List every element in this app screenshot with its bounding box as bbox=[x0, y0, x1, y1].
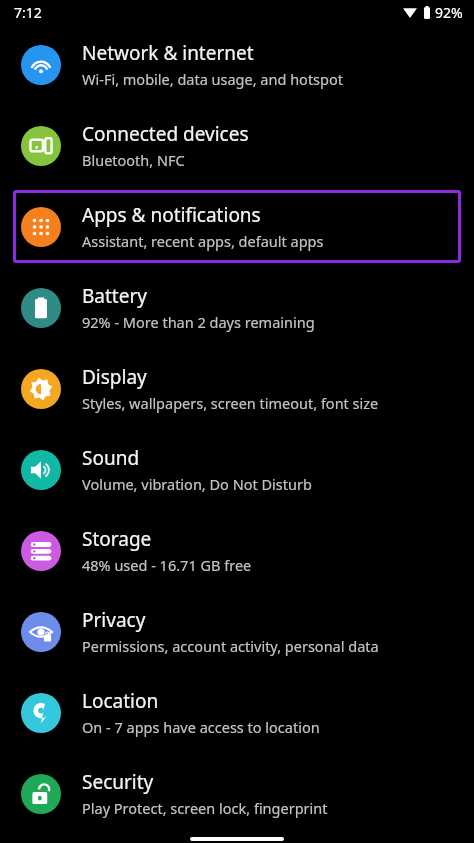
button[interactable]: Apps & notifications bbox=[13, 190, 461, 263]
staticText: Play Protect, screen lock, fingerprint bbox=[82, 798, 328, 818]
button[interactable]: Connected devices bbox=[0, 105, 474, 186]
staticText: Location bbox=[82, 688, 159, 714]
staticText: Network & internet bbox=[82, 40, 254, 66]
staticText: 48% used - 16.71 GB free bbox=[82, 555, 252, 575]
staticText: Styles, wallpapers, screen timeout, font… bbox=[82, 393, 379, 413]
staticText: Assistant, recent apps, default apps bbox=[82, 231, 324, 251]
staticText: On - 7 apps have access to location bbox=[82, 717, 320, 737]
button[interactable]: Display bbox=[0, 348, 474, 429]
staticText: Storage bbox=[82, 526, 152, 552]
button[interactable]: Storage bbox=[0, 510, 474, 591]
button[interactable]: Sound bbox=[0, 429, 474, 510]
staticText: Connected devices bbox=[82, 121, 249, 147]
staticText: Volume, vibration, Do Not Disturb bbox=[82, 474, 312, 494]
staticText: Wi-Fi, mobile, data usage, and hotspot bbox=[82, 69, 343, 89]
staticText: Display bbox=[82, 364, 147, 390]
staticText: Bluetooth, NFC bbox=[82, 150, 185, 170]
staticText: Sound bbox=[82, 445, 140, 471]
button[interactable]: Battery bbox=[0, 267, 474, 348]
staticText: Apps & notifications bbox=[82, 202, 261, 228]
button[interactable]: Privacy bbox=[0, 591, 474, 672]
button[interactable]: Security bbox=[0, 753, 474, 834]
staticText: Security bbox=[82, 769, 154, 795]
staticText: Battery bbox=[82, 283, 147, 309]
staticText: 7:12 bbox=[14, 3, 42, 22]
staticText: 92% - More than 2 days remaining bbox=[82, 312, 315, 332]
staticText: 92% bbox=[435, 3, 463, 22]
button[interactable]: Network & internet bbox=[0, 24, 474, 105]
button[interactable]: Location bbox=[0, 672, 474, 753]
staticText: Permissions, account activity, personal … bbox=[82, 636, 379, 656]
staticText: Privacy bbox=[82, 607, 146, 633]
